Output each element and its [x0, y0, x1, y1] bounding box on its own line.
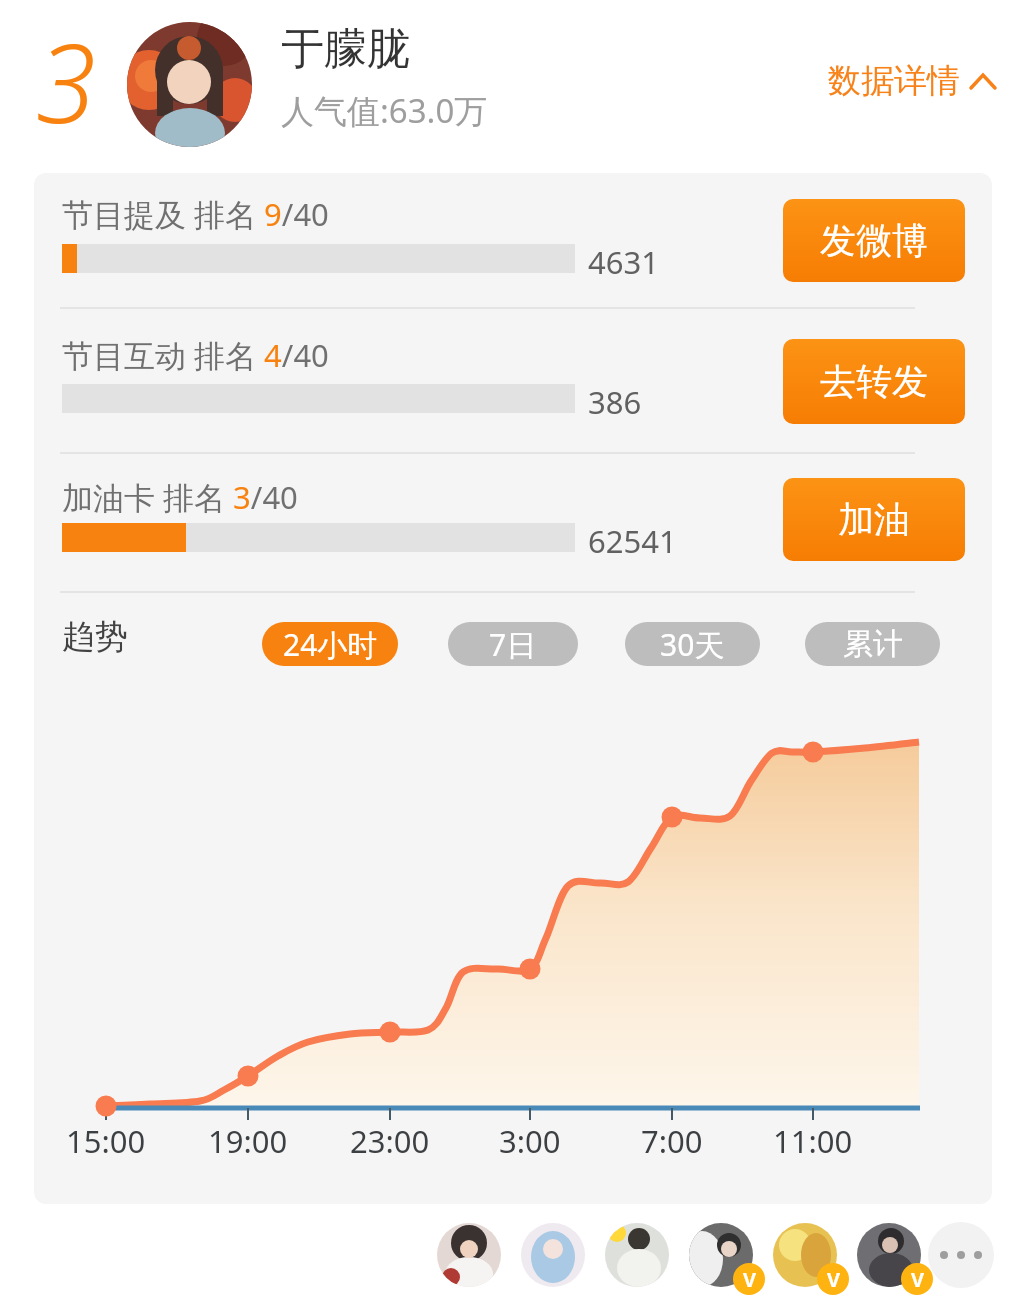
staticText: 于朦胧	[281, 22, 410, 76]
staticText: 7:00	[641, 1120, 703, 1162]
staticText: 累计	[843, 625, 903, 663]
button[interactable]: 数据详情	[828, 60, 996, 102]
button[interactable]	[928, 1222, 994, 1288]
staticText: V	[827, 1266, 840, 1293]
staticText: 24小时	[283, 624, 378, 665]
button[interactable]	[689, 1223, 753, 1287]
button[interactable]: 30天	[625, 622, 760, 666]
button[interactable]	[437, 1223, 501, 1287]
staticText: 发微博	[820, 218, 928, 263]
staticText: 4631	[588, 241, 659, 283]
staticText: 节目提及 排名 9/40	[62, 193, 329, 235]
button[interactable]: 去转发	[783, 339, 965, 424]
staticText: 3:00	[499, 1120, 561, 1162]
staticText: 386	[588, 381, 642, 423]
staticText: 人气值:63.0万	[281, 88, 488, 133]
staticText: 7日	[489, 624, 537, 665]
staticText: 数据详情	[828, 60, 960, 102]
staticText: 23:00	[350, 1120, 430, 1162]
button[interactable]	[521, 1223, 585, 1287]
staticText: 15:00	[66, 1120, 146, 1162]
button[interactable]	[605, 1223, 669, 1287]
staticText: 加油卡 排名 3/40	[62, 476, 298, 518]
staticText: 62541	[588, 520, 677, 562]
button[interactable]: 7日	[448, 622, 578, 666]
staticText: 趋势	[62, 616, 128, 658]
button[interactable]: 加油	[783, 478, 965, 561]
button[interactable]	[857, 1223, 921, 1287]
staticText: 30天	[660, 624, 725, 665]
button[interactable]: 发微博	[783, 199, 965, 282]
button[interactable]: 24小时	[262, 622, 398, 666]
button[interactable]	[127, 22, 252, 147]
staticText: 节目互动 排名 4/40	[62, 334, 329, 376]
staticText: V	[911, 1266, 924, 1293]
button[interactable]	[773, 1223, 837, 1287]
staticText: 加油	[838, 497, 910, 542]
staticText: V	[743, 1266, 756, 1293]
staticText: 11:00	[773, 1120, 853, 1162]
staticText: 19:00	[208, 1120, 288, 1162]
button[interactable]: 累计	[805, 622, 940, 666]
staticText: 去转发	[820, 359, 928, 404]
staticText: 3	[36, 8, 96, 155]
